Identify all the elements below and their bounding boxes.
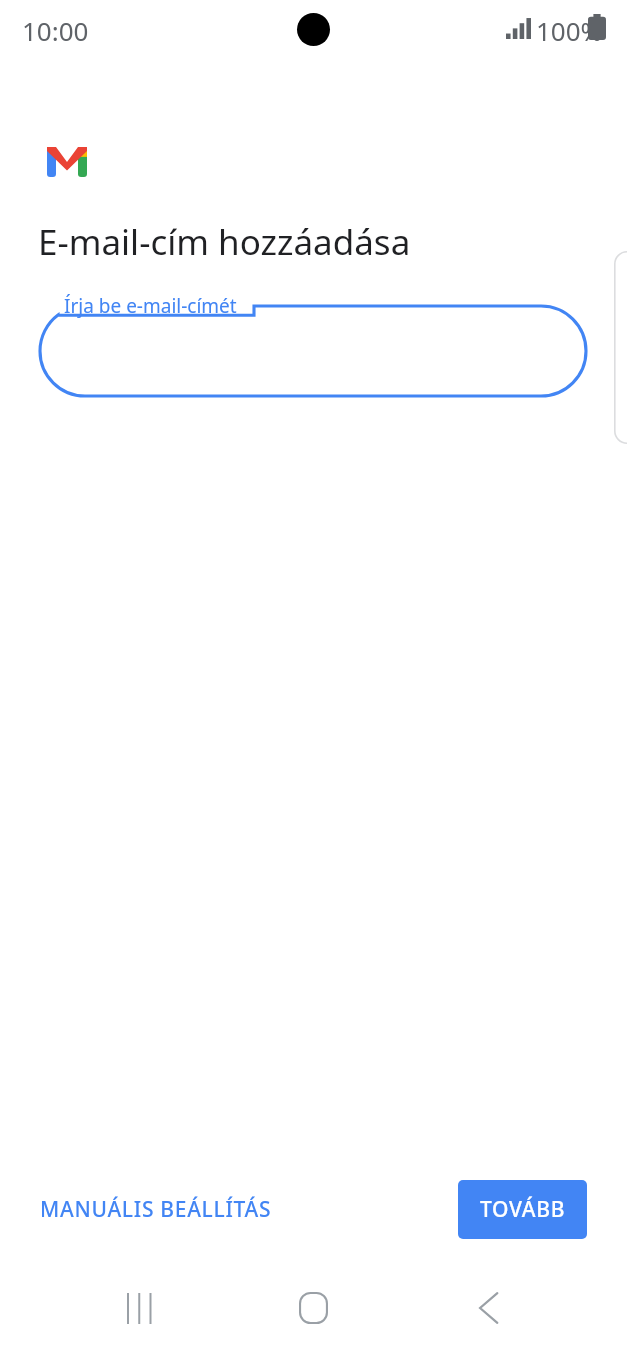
button[interactable]: MANUÁLIS BEÁLLÍTÁS: [24, 1185, 290, 1234]
staticText: E-mail-cím hozzáadása: [38, 218, 411, 266]
button[interactable]: Recent apps: [108, 1276, 172, 1340]
staticText: MANUÁLIS BEÁLLÍTÁS: [40, 1195, 272, 1224]
staticText: TOVÁBB: [480, 1195, 566, 1224]
staticText: 10:00: [22, 13, 89, 48]
button[interactable]: TOVÁBB: [458, 1180, 587, 1239]
button[interactable]: Back: [456, 1276, 520, 1340]
staticText: Írja be e-mail-címét: [64, 293, 237, 319]
staticText: 100%: [536, 13, 603, 48]
button[interactable]: [34, 286, 592, 406]
button[interactable]: Home: [281, 1276, 345, 1340]
